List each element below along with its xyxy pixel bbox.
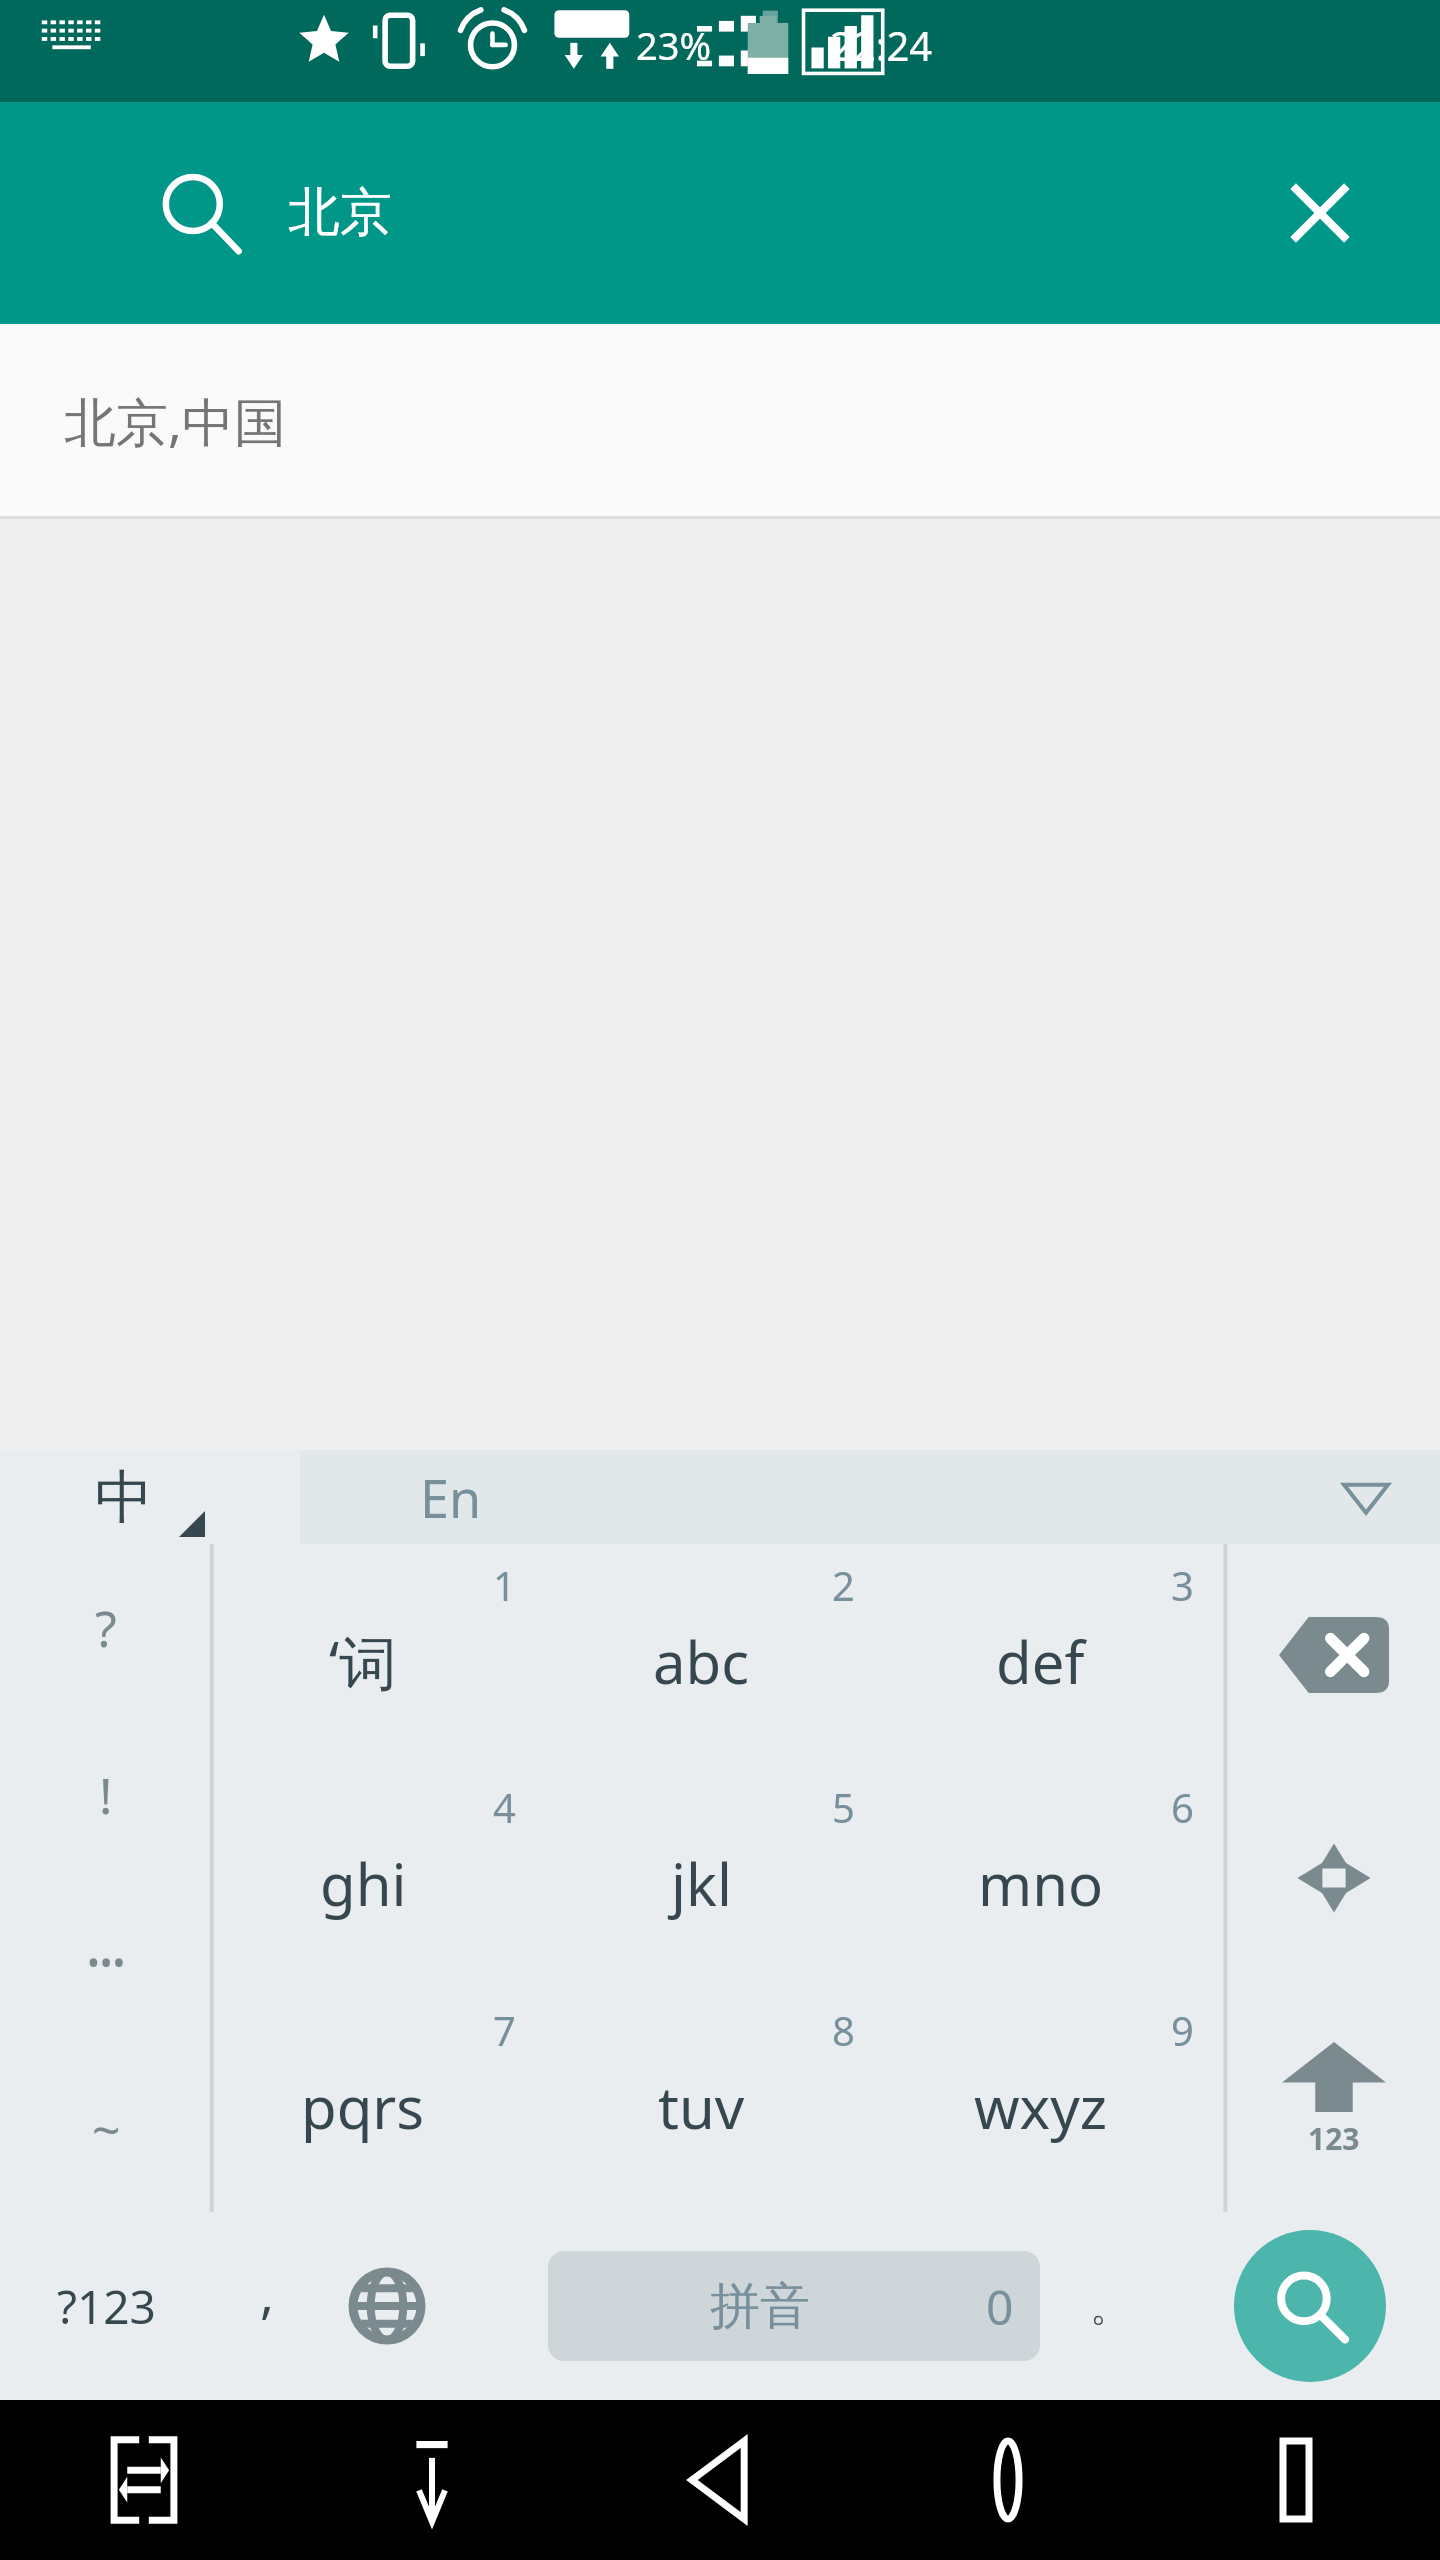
- staticText: !: [99, 1761, 113, 1829]
- staticText: 北京,中国: [64, 385, 286, 456]
- staticText: 123: [1308, 2118, 1360, 2159]
- button[interactable]: Cursor keys: [1228, 1766, 1440, 1989]
- staticText: 拼音: [710, 2275, 810, 2338]
- staticText: 中: [95, 1461, 153, 1534]
- button[interactable]: Home: [864, 2400, 1152, 2560]
- staticText: 0: [986, 2274, 1014, 2339]
- button[interactable]: tuv: [550, 1989, 889, 2212]
- staticText: 4: [493, 1780, 516, 1834]
- staticText: 6: [1171, 1780, 1194, 1834]
- staticText: ~: [92, 2095, 121, 2163]
- button[interactable]: En: [300, 1450, 1440, 1544]
- button[interactable]: Recents: [1152, 2400, 1440, 2560]
- staticText: pqrs: [301, 2067, 425, 2146]
- button[interactable]: Search: [155, 168, 245, 258]
- staticText: 北京: [288, 180, 392, 246]
- staticText: def: [996, 1622, 1085, 1701]
- staticText: En: [420, 1462, 482, 1533]
- button[interactable]: 中: [0, 1450, 300, 1544]
- button[interactable]: 北京,中国: [0, 324, 1440, 516]
- staticText: ?: [95, 1594, 117, 1662]
- staticText: 9: [1171, 2003, 1194, 2057]
- staticText: 。: [1090, 2281, 1130, 2331]
- staticText: 3: [1171, 1558, 1194, 1612]
- button[interactable]: Backspace: [1228, 1544, 1440, 1766]
- button[interactable]: Shift 123: [1228, 1989, 1440, 2212]
- button[interactable]: ‘词: [212, 1544, 550, 1766]
- button[interactable]: Switch keyboard: [0, 2400, 288, 2560]
- button[interactable]: ghi: [212, 1766, 550, 1989]
- button[interactable]: ~: [0, 2045, 212, 2212]
- staticText: 8: [832, 2003, 855, 2057]
- staticText: jkl: [671, 1844, 732, 1923]
- staticText: mno: [978, 1844, 1104, 1923]
- button[interactable]: •••: [0, 1878, 212, 2045]
- button[interactable]: ,: [212, 2212, 322, 2400]
- button[interactable]: Search: [1234, 2230, 1386, 2382]
- staticText: 22:24: [830, 18, 933, 72]
- staticText: •••: [87, 1939, 126, 1985]
- staticText: 2: [832, 1558, 855, 1612]
- staticText: 7: [493, 2003, 516, 2057]
- button[interactable]: 。: [1040, 2212, 1180, 2400]
- staticText: ?123: [57, 2275, 156, 2338]
- other: Expand: [1344, 1475, 1388, 1519]
- staticText: ,: [260, 2257, 274, 2328]
- button[interactable]: abc: [550, 1544, 889, 1766]
- button[interactable]: jkl: [550, 1766, 889, 1989]
- button[interactable]: 拼音: [548, 2251, 1040, 2361]
- staticText: abc: [653, 1622, 750, 1701]
- button[interactable]: Hide keyboard: [288, 2400, 576, 2560]
- button[interactable]: def: [889, 1544, 1228, 1766]
- button[interactable]: mno: [889, 1766, 1228, 1989]
- button[interactable]: Change language: [322, 2212, 452, 2400]
- button[interactable]: !: [0, 1711, 212, 1878]
- button[interactable]: ?123: [0, 2212, 212, 2400]
- staticText: 23%: [636, 19, 712, 71]
- staticText: 1: [493, 1558, 516, 1612]
- button[interactable]: Clear: [1272, 165, 1368, 261]
- staticText: ‘词: [329, 1622, 398, 1701]
- staticText: ghi: [320, 1844, 407, 1923]
- staticText: wxyz: [974, 2067, 1108, 2146]
- button[interactable]: wxyz: [889, 1989, 1228, 2212]
- button[interactable]: ?: [0, 1544, 212, 1711]
- staticText: tuv: [658, 2067, 745, 2146]
- button[interactable]: pqrs: [212, 1989, 550, 2212]
- button[interactable]: Back: [576, 2400, 864, 2560]
- staticText: 5: [832, 1780, 855, 1834]
